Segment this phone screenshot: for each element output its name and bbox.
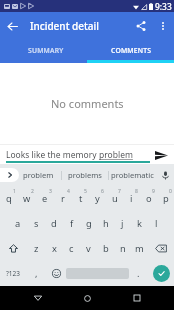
button[interactable]: m <box>131 236 148 261</box>
button[interactable]: l <box>148 211 165 236</box>
button[interactable]: . <box>129 261 148 286</box>
staticText: No comments <box>51 96 124 111</box>
button[interactable]: x <box>45 236 63 261</box>
button[interactable]: SUMMARY <box>3 40 88 60</box>
staticText: h <box>103 217 109 230</box>
button[interactable]: problems <box>62 164 108 186</box>
staticText: 6 <box>101 188 104 195</box>
button[interactable]: q <box>0 186 18 211</box>
button[interactable]: z <box>27 236 45 261</box>
button[interactable]: problem <box>15 164 61 186</box>
button[interactable]: More suggestions <box>0 164 19 186</box>
staticText: l <box>155 217 158 230</box>
staticText: problem <box>99 149 133 161</box>
staticText: r <box>61 192 65 205</box>
button[interactable]: v <box>80 236 97 261</box>
staticText: c <box>69 242 74 255</box>
staticText: d <box>51 217 57 230</box>
staticText: COMMENTS <box>111 46 152 55</box>
button[interactable]: b <box>97 236 114 261</box>
button[interactable]: e <box>36 186 54 211</box>
staticText: 1 <box>13 188 16 195</box>
staticText: problematic <box>111 170 154 180</box>
staticText: q <box>6 192 12 205</box>
button[interactable]: COMMENTS <box>88 40 174 60</box>
staticText: z <box>34 242 39 255</box>
button[interactable]: Backspace <box>148 236 174 261</box>
staticText: 0 <box>169 188 172 195</box>
staticText: 9 <box>152 188 155 195</box>
button[interactable]: Share <box>129 14 153 38</box>
button[interactable]: Back <box>26 286 50 310</box>
button[interactable]: problematic <box>109 164 155 186</box>
button[interactable]: t <box>72 186 89 211</box>
staticText: f <box>70 217 74 230</box>
staticText: , <box>35 267 38 280</box>
button[interactable]: d <box>45 211 63 236</box>
staticText: s <box>34 217 39 230</box>
button[interactable]: c <box>63 236 80 261</box>
staticText: m <box>135 242 144 255</box>
staticText: 8 <box>135 188 138 195</box>
staticText: g <box>86 217 92 230</box>
staticText: 7 <box>118 188 121 195</box>
button[interactable]: p <box>157 186 174 211</box>
button[interactable]: Enter <box>148 261 174 286</box>
staticText: n <box>120 242 126 255</box>
staticText: w <box>23 192 31 205</box>
staticText: 4 <box>67 188 70 195</box>
staticText: e <box>42 192 48 205</box>
staticText: Incident detail <box>30 19 99 33</box>
button[interactable]: Shift <box>0 236 27 261</box>
button[interactable]: o <box>140 186 157 211</box>
staticText: . <box>137 267 140 280</box>
button[interactable]: n <box>114 236 131 261</box>
button[interactable]: ?123 <box>0 261 26 286</box>
staticText: o <box>146 192 152 205</box>
button[interactable]: More options <box>153 16 173 36</box>
staticText: k <box>137 217 142 230</box>
button[interactable]: Home <box>75 286 99 310</box>
button[interactable]: w <box>18 186 36 211</box>
button[interactable]: Recent apps <box>125 286 149 310</box>
staticText: 2 <box>31 188 34 195</box>
button[interactable]: a <box>9 211 27 236</box>
staticText: SUMMARY <box>28 46 64 55</box>
staticText: u <box>112 192 118 205</box>
button[interactable]: f <box>63 211 80 236</box>
button[interactable]: u <box>106 186 123 211</box>
button[interactable]: r <box>54 186 72 211</box>
staticText: i <box>130 192 133 205</box>
button[interactable]: s <box>27 211 45 236</box>
staticText: p <box>163 192 169 205</box>
button[interactable]: y <box>89 186 106 211</box>
button[interactable]: Send <box>149 146 173 165</box>
staticText: 3 <box>49 188 52 195</box>
staticText: x <box>52 242 57 255</box>
button[interactable]: Space <box>66 261 129 286</box>
button[interactable]: , <box>26 261 47 286</box>
button[interactable]: Voice input <box>157 164 174 186</box>
staticText: a <box>15 217 21 230</box>
staticText: b <box>103 242 109 255</box>
button[interactable]: i <box>123 186 140 211</box>
staticText: j <box>121 217 124 230</box>
staticText: 9:33 <box>155 1 172 12</box>
button[interactable]: j <box>114 211 131 236</box>
staticText: y <box>95 192 100 205</box>
button[interactable]: k <box>131 211 148 236</box>
button[interactable]: h <box>97 211 114 236</box>
staticText: problem <box>23 170 54 180</box>
staticText: problems <box>68 170 102 180</box>
staticText: v <box>86 242 91 255</box>
button[interactable]: g <box>80 211 97 236</box>
button[interactable]: Emoji <box>47 261 66 286</box>
staticText: Looks like the memory <box>6 149 99 161</box>
staticText: t <box>79 192 83 205</box>
staticText: 5 <box>84 188 87 195</box>
staticText: ?123 <box>6 269 20 278</box>
button[interactable]: Navigate up <box>0 14 24 38</box>
